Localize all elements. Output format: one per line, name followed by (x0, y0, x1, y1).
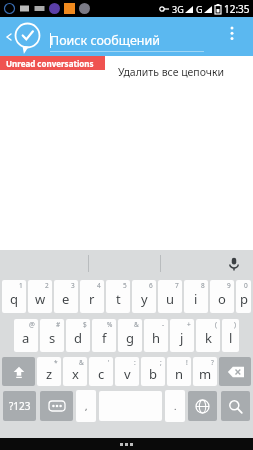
staticText: u (166, 290, 175, 308)
button[interactable]: o (210, 280, 234, 313)
staticText: t (116, 290, 121, 308)
staticText: 7 (175, 281, 179, 290)
staticText: f (102, 329, 107, 347)
button[interactable]: Backspace (219, 357, 251, 386)
button[interactable]: Unread conversations (0, 56, 253, 70)
button[interactable]: a (14, 319, 38, 352)
staticText: , (85, 400, 88, 412)
staticText: a (22, 329, 30, 347)
button[interactable]: h (144, 319, 168, 352)
staticText: i (194, 290, 198, 308)
staticText: G (196, 3, 203, 15)
staticText: h (152, 329, 161, 347)
button[interactable]: n (167, 357, 191, 386)
staticText: # (56, 320, 61, 329)
staticText: j (180, 329, 184, 347)
staticText: m (199, 365, 212, 383)
button[interactable]: g (118, 319, 142, 352)
button[interactable]: u (158, 280, 182, 313)
staticText: 8 (201, 281, 205, 290)
button[interactable]: j (170, 319, 194, 352)
staticText: ' (108, 358, 110, 367)
staticText: 3G (172, 3, 184, 15)
staticText: 1 (19, 281, 23, 290)
button[interactable]: Back (0, 17, 46, 56)
staticText: c (98, 365, 105, 383)
button[interactable]: y (132, 280, 156, 313)
staticText: . (174, 400, 177, 412)
button[interactable]: k (196, 319, 220, 352)
button[interactable]: s (40, 319, 64, 352)
staticText: ! (186, 358, 188, 367)
staticText: ? (211, 358, 214, 367)
button[interactable]: t (106, 280, 130, 313)
button[interactable]: Search (221, 391, 250, 421)
button[interactable]: ?123 (3, 391, 36, 421)
button[interactable]: Emoji (40, 391, 73, 421)
staticText: & (79, 358, 84, 367)
button[interactable]: e (54, 280, 78, 313)
staticText: ) (234, 320, 236, 329)
button[interactable]: More options (220, 21, 244, 45)
staticText: $ (83, 320, 87, 329)
staticText: s (49, 329, 56, 347)
staticText: o (218, 290, 226, 308)
staticText: d (74, 329, 82, 347)
staticText: 2 (45, 281, 49, 290)
button[interactable]: Удалить все цепочки (105, 56, 253, 237)
staticText: : (134, 358, 136, 367)
staticText: & (134, 320, 139, 329)
button[interactable]: . (165, 390, 185, 422)
button[interactable]: b (141, 357, 165, 386)
staticText: @ (29, 320, 35, 329)
staticText: - (162, 320, 165, 329)
button[interactable]: Поиск сообщений (50, 28, 204, 52)
staticText: l (229, 329, 233, 347)
staticText: 6 (149, 281, 153, 290)
button[interactable]: Shift (2, 357, 35, 386)
staticText: 0 (244, 281, 248, 290)
staticText: v (124, 365, 131, 383)
button[interactable]: d (66, 319, 90, 352)
staticText: * (54, 358, 58, 367)
button[interactable]: m (193, 357, 217, 386)
button[interactable]: , (76, 390, 96, 422)
staticText: p (240, 290, 248, 308)
staticText: z (46, 365, 53, 383)
staticText: b (149, 365, 157, 383)
staticText: ?123 (9, 399, 31, 413)
staticText: Удалить все цепочки (118, 65, 225, 79)
button[interactable]: Change language (188, 391, 217, 421)
button[interactable]: r (80, 280, 104, 313)
button[interactable]: z (37, 357, 61, 386)
staticText: 5 (123, 281, 127, 290)
button[interactable]: w (28, 280, 52, 313)
button[interactable]: f (92, 319, 116, 352)
staticText: x (72, 365, 79, 383)
staticText: + (187, 320, 191, 329)
button[interactable]: Voice input (223, 253, 245, 275)
button[interactable]: i (184, 280, 208, 313)
staticText: g (126, 329, 134, 347)
staticText: 3 (71, 281, 75, 290)
button[interactable]: v (115, 357, 139, 386)
staticText: k (205, 329, 212, 347)
staticText: r (89, 290, 95, 308)
button[interactable]: p (236, 280, 251, 313)
button[interactable]: x (63, 357, 87, 386)
button[interactable]: c (89, 357, 113, 386)
button[interactable]: q (2, 280, 26, 313)
staticText: q (10, 290, 18, 308)
staticText: ( (215, 320, 217, 329)
staticText: e (62, 290, 70, 308)
staticText: 9 (227, 281, 231, 290)
staticText: y (141, 290, 148, 308)
staticText: 12:35 (224, 2, 250, 16)
staticText: 4 (97, 281, 101, 290)
staticText: Поиск сообщений (50, 32, 161, 49)
staticText: % (107, 320, 113, 329)
staticText: ; (160, 358, 162, 367)
button[interactable]: l (222, 319, 239, 352)
staticText: n (175, 365, 184, 383)
